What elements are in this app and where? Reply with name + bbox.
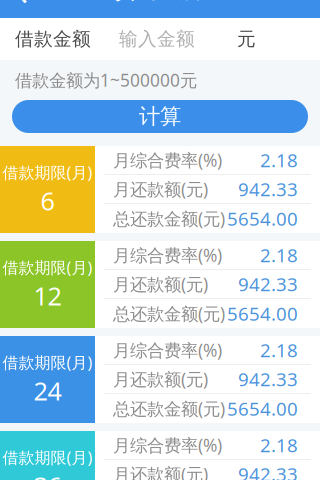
staticText: 计算 [139, 103, 181, 130]
staticText: 月还款额(元) [113, 177, 208, 200]
staticText: 月综合费率(%) [113, 148, 222, 171]
staticText: 月综合费率(%) [113, 243, 222, 266]
staticText: 月综合费率(%) [113, 338, 222, 361]
staticText: 2.18 [260, 338, 298, 362]
staticText: 942.33 [238, 272, 298, 296]
staticText: 月综合费率(%) [113, 433, 222, 456]
staticText: 借款期限(月) [2, 352, 92, 373]
staticText: 2.18 [260, 433, 298, 457]
staticText: 借款期限(月) [2, 257, 92, 278]
staticText: 总还款金额(元) [113, 207, 225, 230]
staticText: 借款金额为1~500000元 [15, 68, 197, 91]
staticText: 5654.00 [227, 396, 298, 421]
staticText: 月还款额(元) [113, 367, 208, 390]
staticText: 贷前试算 [114, 0, 206, 4]
staticText: 6 [40, 184, 54, 217]
button[interactable]: 计算 [12, 100, 308, 133]
staticText: 借款期限(月) [2, 447, 92, 468]
staticText: 借款期限(月) [2, 162, 92, 183]
staticText: 942.33 [238, 177, 298, 201]
staticText: 2.18 [260, 243, 298, 267]
staticText: ‹ [16, 0, 28, 16]
staticText: 942.33 [238, 462, 298, 480]
staticText: 元 [237, 27, 256, 50]
staticText: 2.18 [260, 148, 298, 172]
staticText: 总还款金额(元) [113, 397, 225, 420]
staticText: 942.33 [238, 367, 298, 391]
staticText: 输入金额 [119, 27, 195, 50]
staticText: 5654.00 [227, 301, 298, 326]
staticText: 24 [33, 374, 61, 407]
staticText: 12 [33, 279, 61, 312]
staticText: 5654.00 [227, 206, 298, 231]
staticText: 月还款额(元) [113, 462, 208, 480]
staticText: 36 [33, 469, 61, 480]
button[interactable]: 借款金额 [0, 18, 320, 60]
staticText: 月还款额(元) [113, 272, 208, 295]
staticText: 借款金额 [15, 27, 91, 50]
button[interactable]: Back [0, 0, 44, 17]
staticText: 总还款金额(元) [113, 302, 225, 325]
